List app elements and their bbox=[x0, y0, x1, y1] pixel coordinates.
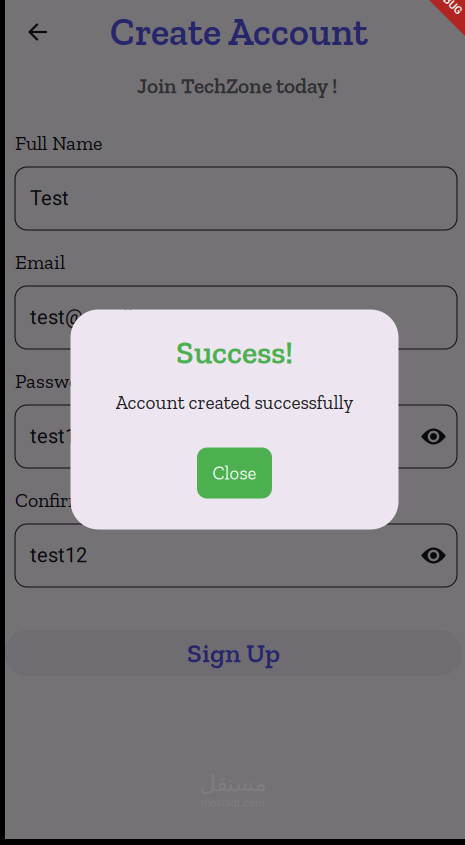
button[interactable]: Sign Up bbox=[5, 630, 462, 676]
staticText: Email bbox=[15, 250, 65, 274]
staticText: test12 bbox=[30, 544, 87, 567]
staticText: مستقل bbox=[199, 770, 266, 796]
button[interactable]: Show password bbox=[410, 406, 457, 467]
button[interactable]: Back bbox=[10, 6, 66, 58]
staticText: test12 bbox=[30, 425, 87, 448]
staticText: DEBUG bbox=[431, 0, 465, 7]
staticText: Full Name bbox=[15, 131, 102, 155]
staticText: Create Account bbox=[110, 9, 368, 55]
staticText: Test bbox=[30, 187, 69, 210]
staticText: mostaql.com bbox=[201, 796, 264, 809]
staticText: Confirm Password bbox=[15, 488, 173, 512]
staticText: Join TechZone today ! bbox=[137, 73, 337, 99]
staticText: Account created successfully bbox=[115, 391, 353, 414]
button[interactable]: Close bbox=[197, 447, 272, 498]
button[interactable]: Show password bbox=[410, 525, 457, 586]
staticText: Success! bbox=[176, 333, 293, 372]
staticText: test@gmail.com bbox=[30, 306, 177, 329]
staticText: Password bbox=[15, 369, 98, 393]
staticText: Sign Up bbox=[187, 637, 280, 669]
staticText: Close bbox=[212, 462, 256, 484]
